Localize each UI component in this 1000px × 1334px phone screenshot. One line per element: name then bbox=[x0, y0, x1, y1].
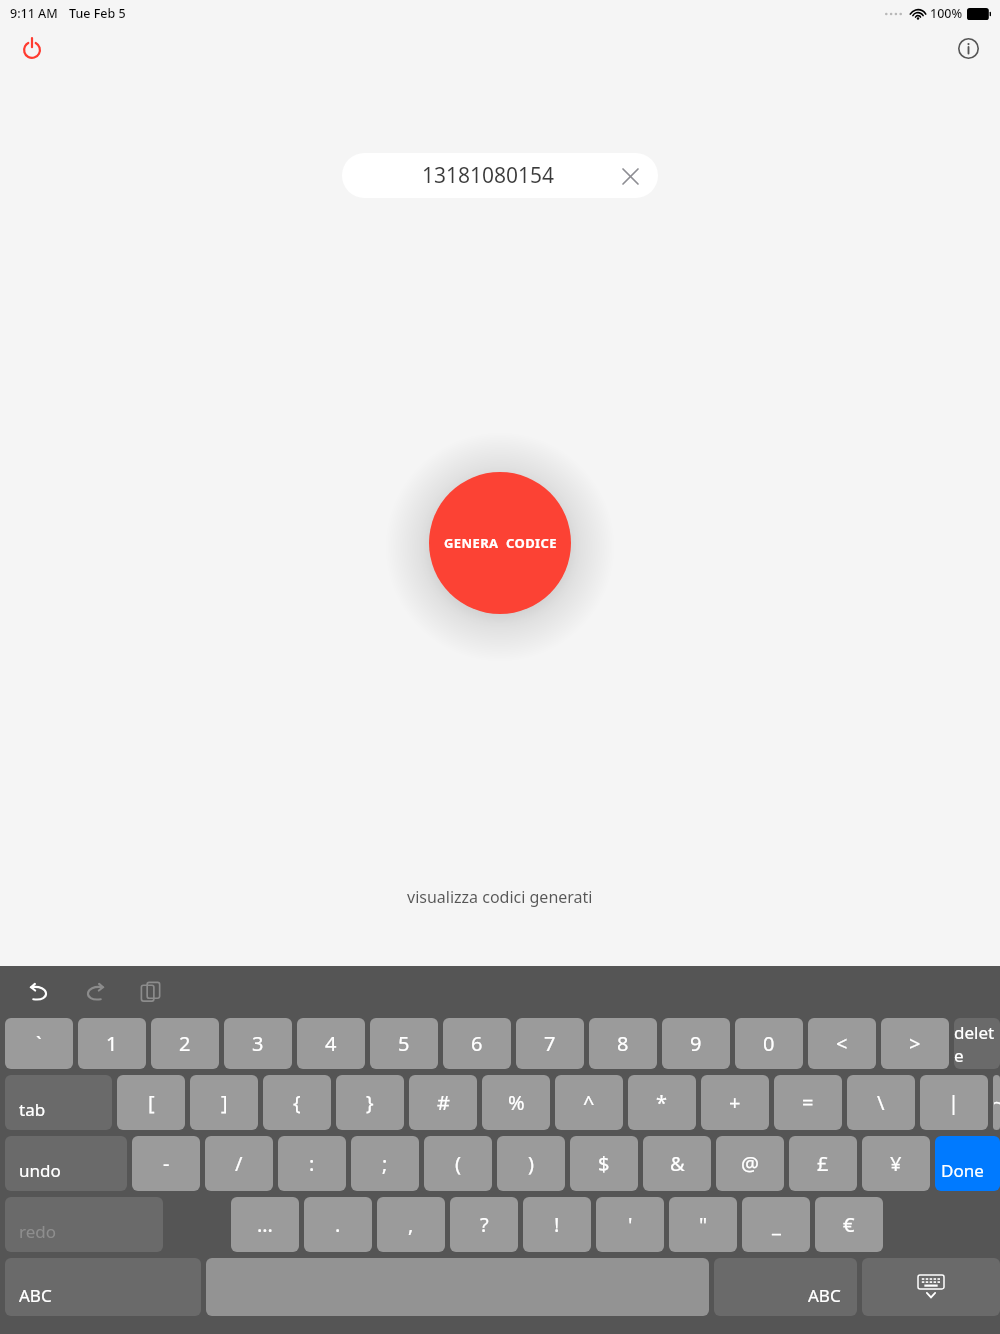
button[interactable]: Info bbox=[950, 30, 986, 66]
staticText: ABC bbox=[19, 1284, 52, 1307]
button[interactable]: Clear text bbox=[616, 162, 644, 190]
staticText: ABC bbox=[808, 1284, 841, 1307]
button[interactable]: _ bbox=[742, 1197, 810, 1252]
button[interactable]: ; bbox=[351, 1136, 419, 1191]
button[interactable]: visualizza codici generati bbox=[0, 886, 1000, 908]
button[interactable]: & bbox=[643, 1136, 711, 1191]
staticText: 5 bbox=[398, 1030, 410, 1057]
button[interactable]: GENERA CODICE bbox=[429, 472, 571, 614]
button[interactable]: 2 bbox=[151, 1018, 219, 1069]
button[interactable]: % bbox=[482, 1075, 550, 1130]
staticText: Done bbox=[941, 1159, 984, 1182]
staticText: _ bbox=[772, 1211, 781, 1238]
staticText: > bbox=[909, 1030, 921, 1057]
button[interactable]: { bbox=[263, 1075, 331, 1130]
button[interactable]: " bbox=[669, 1197, 737, 1252]
button[interactable]: ABC bbox=[5, 1258, 201, 1316]
button[interactable]: ~ bbox=[993, 1075, 1000, 1130]
button[interactable]: … bbox=[231, 1197, 299, 1252]
staticText: 0 bbox=[763, 1030, 775, 1057]
button[interactable]: Done bbox=[935, 1136, 1000, 1191]
staticText: 6 bbox=[471, 1030, 483, 1057]
staticText: 2 bbox=[179, 1030, 191, 1057]
staticText: : bbox=[309, 1150, 315, 1177]
button[interactable]: ' bbox=[596, 1197, 664, 1252]
staticText: € bbox=[843, 1211, 855, 1238]
staticText: 3 bbox=[252, 1030, 264, 1057]
button[interactable]: redo bbox=[5, 1197, 163, 1252]
staticText: ! bbox=[554, 1211, 560, 1238]
staticText: , bbox=[408, 1211, 414, 1238]
staticText: $ bbox=[598, 1150, 610, 1177]
button[interactable]: < bbox=[808, 1018, 876, 1069]
button[interactable]: ! bbox=[523, 1197, 591, 1252]
button[interactable]: ABC bbox=[714, 1258, 857, 1316]
staticText: ' bbox=[628, 1211, 633, 1238]
button[interactable]: Hide keyboard bbox=[862, 1258, 1000, 1316]
button[interactable]: 5 bbox=[370, 1018, 438, 1069]
button[interactable]: $ bbox=[570, 1136, 638, 1191]
button[interactable]: } bbox=[336, 1075, 404, 1130]
staticText: < bbox=[836, 1030, 848, 1057]
button[interactable]: ( bbox=[424, 1136, 492, 1191]
staticText: { bbox=[293, 1089, 301, 1116]
button[interactable]: undo bbox=[20, 973, 58, 1011]
button[interactable]: paste bbox=[132, 973, 170, 1011]
button[interactable]: | bbox=[920, 1075, 988, 1130]
button[interactable]: * bbox=[628, 1075, 696, 1130]
button[interactable]: > bbox=[881, 1018, 949, 1069]
staticText: GENERA CODICE bbox=[444, 534, 557, 552]
button[interactable]: ^ bbox=[555, 1075, 623, 1130]
button[interactable]: / bbox=[205, 1136, 273, 1191]
button[interactable]: 0 bbox=[735, 1018, 803, 1069]
staticText: - bbox=[163, 1150, 170, 1177]
staticText: visualizza codici generati bbox=[407, 886, 593, 908]
staticText: 1 bbox=[106, 1030, 118, 1057]
staticText: [ bbox=[148, 1089, 155, 1116]
button[interactable]: ? bbox=[450, 1197, 518, 1252]
button[interactable]: ` bbox=[5, 1018, 73, 1069]
button[interactable]: 7 bbox=[516, 1018, 584, 1069]
button[interactable]: = bbox=[774, 1075, 842, 1130]
button[interactable]: £ bbox=[789, 1136, 857, 1191]
staticText: delete bbox=[954, 1021, 1000, 1067]
button[interactable]: , bbox=[377, 1197, 445, 1252]
button[interactable]: . bbox=[304, 1197, 372, 1252]
button[interactable]: - bbox=[132, 1136, 200, 1191]
button[interactable]: [ bbox=[117, 1075, 185, 1130]
staticText: | bbox=[948, 1089, 960, 1116]
button[interactable]: ] bbox=[190, 1075, 258, 1130]
button[interactable]: \ bbox=[847, 1075, 915, 1130]
button[interactable]: 9 bbox=[662, 1018, 730, 1069]
button[interactable]: 3 bbox=[224, 1018, 292, 1069]
staticText: ) bbox=[528, 1150, 534, 1177]
button[interactable]: 6 bbox=[443, 1018, 511, 1069]
staticText: ? bbox=[480, 1211, 489, 1238]
button[interactable]: 13181080154 bbox=[342, 153, 658, 198]
button[interactable]: ) bbox=[497, 1136, 565, 1191]
button[interactable]: @ bbox=[716, 1136, 784, 1191]
button[interactable]: Power bbox=[14, 30, 50, 66]
staticText: " bbox=[699, 1211, 708, 1238]
button[interactable]: 4 bbox=[297, 1018, 365, 1069]
staticText: \ bbox=[877, 1089, 885, 1116]
button[interactable]: 8 bbox=[589, 1018, 657, 1069]
button[interactable]: 1 bbox=[78, 1018, 146, 1069]
button[interactable]: + bbox=[701, 1075, 769, 1130]
button[interactable]: tab bbox=[5, 1075, 112, 1130]
button[interactable]: undo bbox=[5, 1136, 127, 1191]
staticText: & bbox=[670, 1150, 685, 1177]
staticText: ¥ bbox=[890, 1150, 902, 1177]
staticText: @ bbox=[741, 1150, 759, 1177]
button[interactable]: ¥ bbox=[862, 1136, 930, 1191]
staticText: 9:11 AM bbox=[10, 5, 58, 22]
button[interactable]: : bbox=[278, 1136, 346, 1191]
button[interactable]: # bbox=[409, 1075, 477, 1130]
staticText: % bbox=[508, 1089, 525, 1116]
staticText: . bbox=[335, 1211, 341, 1238]
button[interactable]: redo bbox=[76, 973, 114, 1011]
button[interactable]: delete bbox=[954, 1018, 1000, 1069]
staticText: ( bbox=[455, 1150, 461, 1177]
button[interactable]: € bbox=[815, 1197, 883, 1252]
